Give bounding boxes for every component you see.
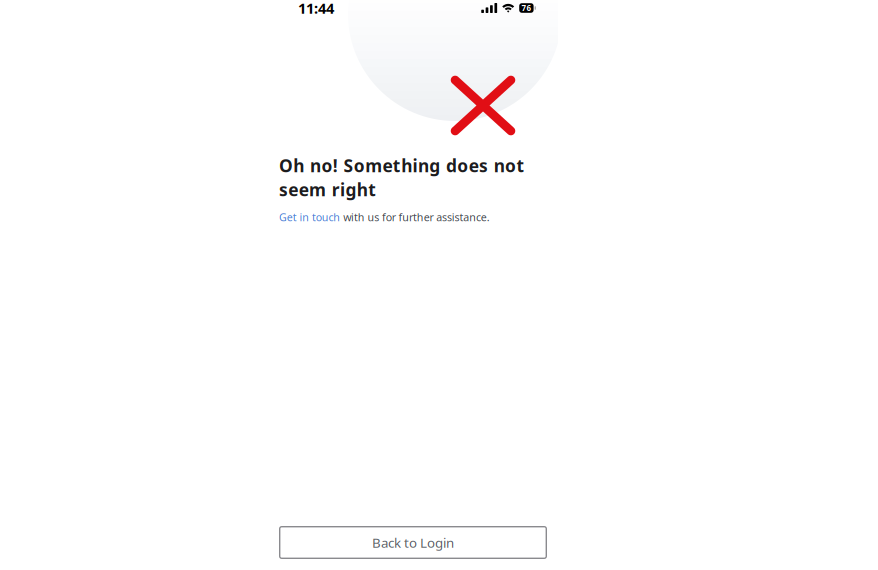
staticText: seem right — [279, 178, 376, 201]
staticText: with us for further assistance. — [340, 210, 490, 224]
button[interactable]: Back to Login — [279, 526, 547, 559]
staticText: Back to Login — [372, 534, 454, 551]
button[interactable]: Get in touch — [279, 210, 340, 224]
staticText: Get in touch — [279, 210, 340, 224]
staticText: 11:44 — [298, 0, 334, 18]
staticText: Oh no! Something does not — [279, 154, 524, 177]
staticText: 76 — [521, 3, 531, 13]
